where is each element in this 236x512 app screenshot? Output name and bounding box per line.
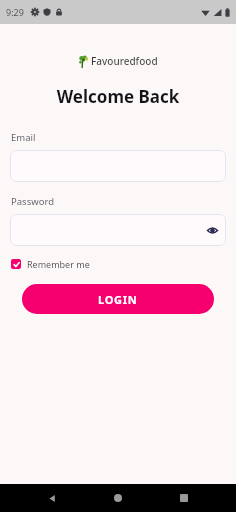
button[interactable]: Show password	[10, 214, 226, 246]
staticText: Email	[11, 131, 36, 144]
button[interactable]: LOGIN	[22, 284, 214, 314]
staticText: LOGIN	[98, 292, 138, 307]
button[interactable]	[10, 150, 226, 182]
staticText: Remember me	[27, 258, 90, 270]
button[interactable]: Remember me	[8, 255, 93, 273]
staticText: 9:29	[6, 6, 24, 18]
staticText: Password	[11, 195, 54, 208]
button[interactable]: Home	[104, 484, 132, 512]
button[interactable]: Show password	[204, 222, 220, 238]
staticText: Favouredfood	[91, 54, 158, 68]
button[interactable]: Recent apps	[170, 484, 198, 512]
button[interactable]: Back	[38, 484, 66, 512]
staticText: Welcome Back	[0, 85, 236, 108]
